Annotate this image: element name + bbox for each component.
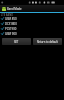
button[interactable]: Return to default (33, 38, 62, 45)
staticText: PCS1900 (5, 27, 17, 31)
button[interactable]: GSM 850 (0, 16, 64, 21)
other: App icon (2, 7, 6, 11)
button[interactable]: DCS1800 (0, 21, 64, 26)
staticText: Band Mode (7, 7, 22, 11)
staticText: SET (14, 40, 19, 44)
staticText: GSM 900 (5, 32, 17, 36)
staticText: GSM 850 (5, 17, 17, 21)
staticText: LTE BAND (1, 13, 14, 16)
button[interactable]: GSM 900 (0, 31, 64, 36)
staticText: Return to default (37, 40, 58, 44)
button[interactable]: PCS1900 (0, 26, 64, 31)
button[interactable]: SET (2, 38, 31, 45)
staticText: DCS1800 (5, 22, 17, 26)
button[interactable]: App icon (0, 5, 64, 13)
